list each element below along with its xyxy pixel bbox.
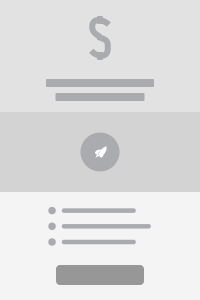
button[interactable]: Play	[80, 132, 119, 171]
button[interactable]: Third item	[48, 238, 136, 246]
button[interactable]: Continue	[56, 265, 144, 285]
button[interactable]: Second item	[48, 222, 151, 230]
button[interactable]: First item	[48, 207, 136, 215]
